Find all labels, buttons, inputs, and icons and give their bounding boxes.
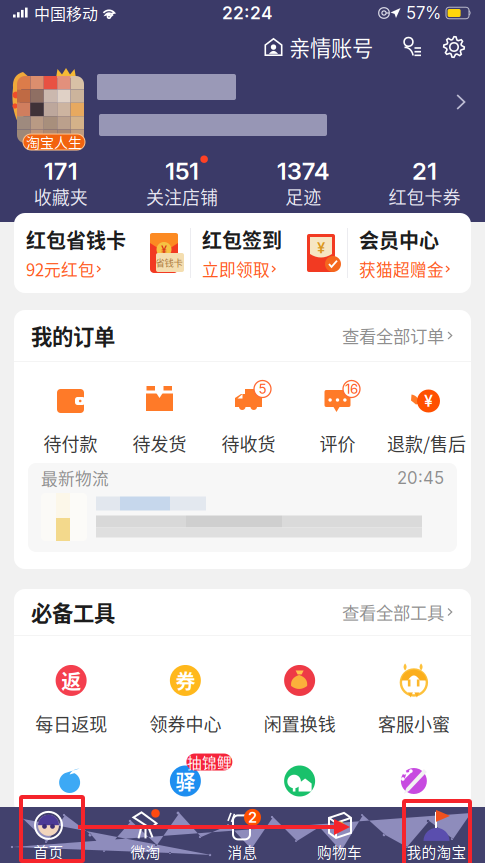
button[interactable]: 首页 (0, 811, 97, 862)
button[interactable]: 21 (364, 153, 485, 210)
staticText: 淘宝人生 (26, 132, 82, 152)
button[interactable]: 驿 (128, 734, 242, 814)
button[interactable]: 171 (0, 153, 121, 210)
staticText: 抽锦鲤 (187, 751, 232, 773)
staticText: 闲置换钱 (264, 710, 336, 737)
staticText: 省钱卡 (155, 256, 182, 269)
button[interactable]: 5 (204, 362, 293, 457)
staticText: 微淘 (130, 841, 160, 862)
staticText: 驿 (175, 766, 195, 795)
button[interactable]: 待付款 (26, 362, 115, 457)
staticText: 中国移动 (30, 1, 102, 25)
staticText: 必备工具 (31, 597, 115, 627)
staticText: 57% (401, 3, 446, 23)
button[interactable]: 返 (14, 633, 128, 737)
button[interactable]: 查看全部订单 (342, 320, 454, 350)
staticText: 最新物流 (41, 466, 109, 490)
button[interactable]: 设置 (439, 28, 469, 66)
staticText: 评价 (319, 430, 355, 456)
staticText: 待发货 (132, 430, 186, 456)
staticText: 红包卡券 (388, 183, 460, 210)
button[interactable]: 我的淘宝 (388, 811, 485, 862)
staticText: 客服小蜜 (378, 710, 450, 737)
staticText: ¥ (317, 239, 325, 257)
button[interactable] (357, 734, 471, 814)
staticText: 查看全部工具 (342, 599, 444, 625)
button[interactable]: 会员中心 (347, 225, 471, 281)
button[interactable] (242, 734, 357, 814)
staticText: 20:45 (397, 468, 444, 488)
button[interactable]: 16 (293, 362, 382, 457)
button[interactable]: 闲置换钱 (242, 633, 357, 737)
staticText: 购物车 (317, 841, 362, 862)
staticText: 待付款 (43, 430, 97, 456)
staticText: 5 (258, 381, 266, 397)
staticText: 返 (61, 666, 81, 695)
staticText: 首页 (33, 841, 63, 862)
staticText: 收藏夹 (34, 183, 88, 210)
button[interactable]: 查看全部工具 (342, 597, 454, 627)
staticText: 我的订单 (31, 320, 115, 351)
button[interactable]: 微淘 (97, 811, 194, 862)
staticText: 我的淘宝 (406, 841, 466, 862)
button[interactable]: ¥ (382, 362, 471, 457)
staticText: 关注店铺 (146, 183, 218, 210)
staticText: 151 (165, 156, 199, 185)
staticText: 会员中心 (359, 225, 439, 254)
button[interactable]: 购物车 (291, 811, 388, 862)
button[interactable]: 红包省钱卡 (14, 225, 190, 281)
staticText: 16 (345, 381, 358, 397)
button[interactable]: 151 (121, 153, 242, 210)
button[interactable] (14, 734, 128, 814)
staticText: 券 (175, 666, 195, 695)
staticText: 亲情账号 (289, 32, 373, 62)
staticText: ¥ (424, 391, 433, 411)
button[interactable]: 客服小蜜 (357, 633, 471, 737)
staticText: ¥ (161, 243, 167, 256)
staticText: 消息 (227, 841, 257, 862)
staticText: 获猫超赠金 (359, 257, 444, 281)
staticText: 立即领取 (202, 257, 270, 281)
staticText: 红包签到 (202, 225, 282, 254)
button[interactable]: 2 (194, 811, 291, 862)
staticText: 92元红包 (26, 257, 95, 281)
button[interactable]: 1374 (242, 153, 364, 210)
staticText: 查看全部订单 (342, 323, 444, 348)
staticText: 每日返现 (35, 710, 107, 737)
button[interactable]: 红包签到 (190, 225, 347, 281)
staticText: 2 (248, 808, 257, 826)
button[interactable]: 好友 (393, 28, 431, 66)
staticText: 足迹 (285, 183, 321, 210)
staticText: 21 (412, 156, 437, 185)
staticText: 22:24 (222, 2, 273, 23)
staticText: 退款/售后 (387, 430, 466, 456)
button[interactable]: 待发货 (115, 362, 204, 457)
staticText: 红包省钱卡 (26, 225, 126, 254)
staticText: 1374 (277, 156, 330, 185)
button[interactable]: 亲情账号 (260, 28, 377, 66)
staticText: 待收货 (221, 430, 275, 456)
button[interactable]: 券 (128, 633, 242, 737)
staticText: 171 (44, 156, 78, 185)
staticText: 领券中心 (149, 710, 221, 737)
